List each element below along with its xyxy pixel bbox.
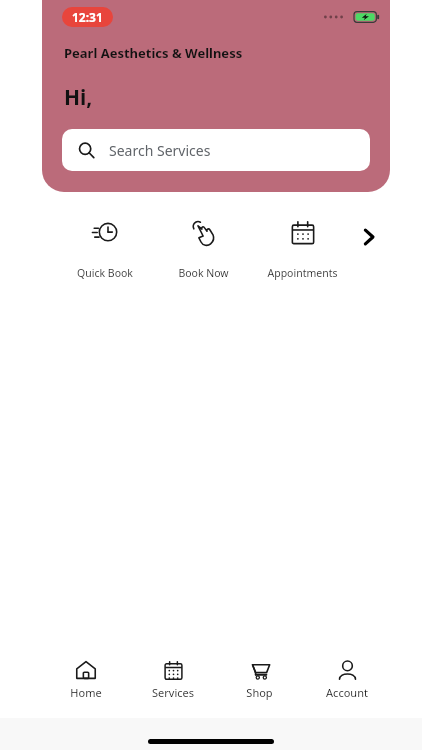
button[interactable]: Home bbox=[42, 656, 129, 702]
button[interactable]: Shop bbox=[216, 656, 303, 702]
staticText: Shop bbox=[246, 685, 273, 700]
staticText: Book Now bbox=[178, 266, 229, 280]
staticText: Hi, bbox=[64, 83, 93, 112]
staticText: Home bbox=[70, 685, 102, 700]
staticText: Account bbox=[326, 685, 368, 700]
staticText: 12:31 bbox=[72, 9, 103, 25]
button[interactable]: Account bbox=[303, 656, 390, 702]
staticText: Search Services bbox=[109, 141, 211, 160]
staticText: Quick Book bbox=[77, 266, 133, 280]
staticText: Services bbox=[152, 685, 194, 700]
button[interactable]: Search Services bbox=[62, 129, 370, 171]
button[interactable]: More actions bbox=[352, 220, 386, 254]
button[interactable]: Book Now bbox=[154, 212, 253, 284]
button[interactable]: Services bbox=[129, 656, 216, 702]
button[interactable]: Quick Book bbox=[56, 212, 154, 284]
staticText: Pearl Aesthetics & Wellness bbox=[64, 44, 243, 62]
button[interactable]: Appointments bbox=[253, 212, 352, 284]
staticText: Appointments bbox=[267, 266, 338, 280]
